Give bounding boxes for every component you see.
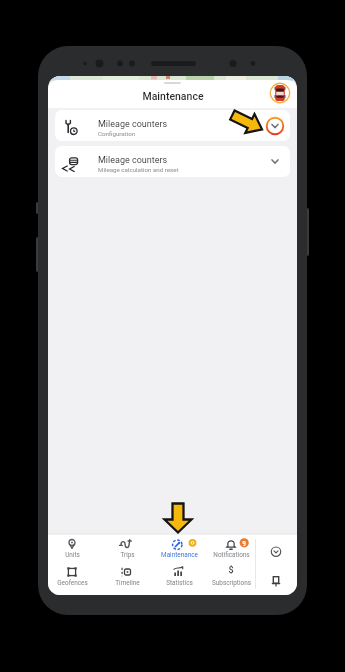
staticText: Mileage calculation and reset <box>98 166 179 173</box>
staticText: Maintenance <box>142 90 204 102</box>
staticText: Geofences <box>57 579 88 587</box>
staticText: Mileage counters <box>98 119 168 130</box>
staticText: Trips <box>120 551 135 559</box>
staticText: Mileage counters <box>98 155 168 166</box>
staticText: Notifications <box>213 551 250 559</box>
button[interactable] <box>55 146 290 177</box>
button[interactable] <box>102 536 152 562</box>
staticText: Subscriptions <box>212 579 251 587</box>
button[interactable] <box>48 563 97 589</box>
staticText: Units <box>65 551 80 559</box>
button[interactable] <box>154 563 204 589</box>
button[interactable] <box>154 536 204 562</box>
button[interactable] <box>264 536 288 560</box>
button[interactable] <box>206 536 256 562</box>
staticText: Timeline <box>115 579 140 587</box>
staticText: Configuration <box>98 130 136 137</box>
staticText: $ <box>228 565 234 576</box>
staticText: 9 <box>242 540 246 548</box>
staticText: Statistics <box>166 579 193 587</box>
button[interactable] <box>48 536 97 562</box>
button[interactable] <box>102 563 152 589</box>
button[interactable] <box>206 563 256 589</box>
staticText: Maintenance <box>161 551 198 559</box>
button[interactable] <box>55 110 290 141</box>
button[interactable] <box>264 568 288 592</box>
button[interactable] <box>269 82 291 104</box>
